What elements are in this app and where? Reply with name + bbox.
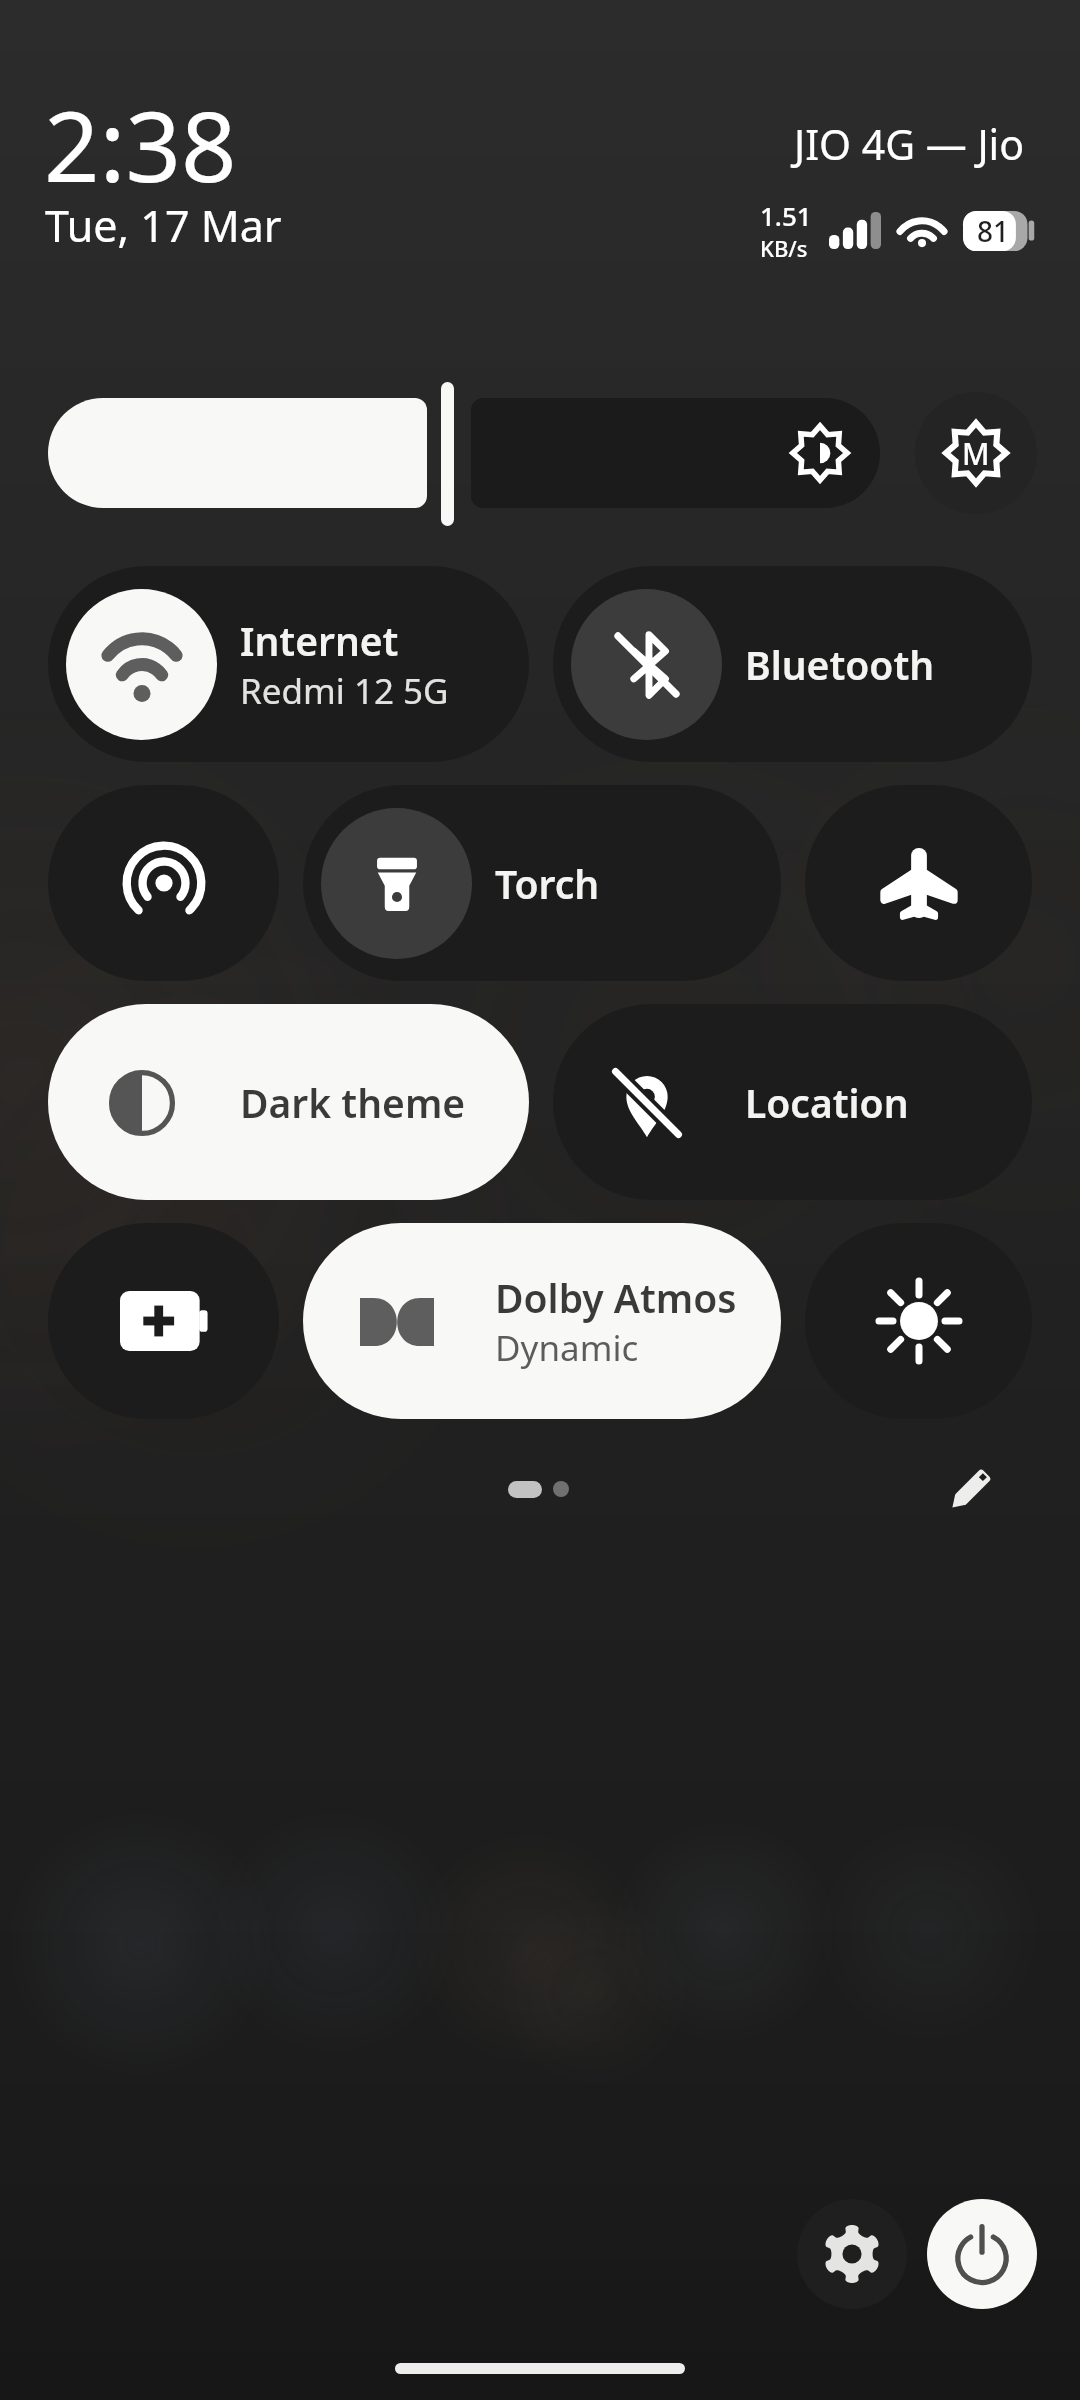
button[interactable]: Power	[927, 2199, 1037, 2309]
staticText: Tue, 17 Mar	[45, 196, 282, 255]
button[interactable]: Edit tiles	[924, 1444, 1016, 1536]
staticText: KB/s	[760, 233, 808, 263]
staticText: Dolby Atmos	[495, 1271, 737, 1324]
staticText: 2:38	[44, 78, 237, 210]
button[interactable]: Page 2	[553, 1481, 569, 1497]
staticText: Redmi 12 5G	[240, 667, 449, 715]
staticText: Internet	[240, 614, 399, 667]
button[interactable]: Page 1	[508, 1481, 542, 1498]
button[interactable]: Dolby Atmos	[303, 1223, 781, 1419]
button[interactable]: Settings	[797, 2199, 907, 2309]
button[interactable]: Dark theme	[48, 1004, 529, 1200]
button[interactable]: Battery saver	[48, 1223, 279, 1419]
staticText: 81	[977, 212, 1010, 250]
button[interactable]: Torch	[303, 785, 781, 981]
staticText: Location	[745, 1076, 909, 1129]
button[interactable]: Airplane mode	[805, 785, 1032, 981]
staticText: Bluetooth	[745, 638, 935, 691]
staticText: Dynamic	[495, 1324, 639, 1372]
button[interactable]: Brightness slider	[48, 398, 427, 508]
button[interactable]: Brightness	[805, 1223, 1032, 1419]
button[interactable]: Bluetooth	[553, 566, 1032, 762]
staticText: M	[962, 433, 990, 474]
staticText: 1.51	[760, 198, 812, 233]
staticText: Torch	[495, 857, 600, 910]
staticText: JIO 4G — Jio	[794, 116, 1024, 172]
staticText: Dark theme	[240, 1076, 466, 1129]
button[interactable]: Internet	[48, 566, 529, 762]
button[interactable]: Auto brightness	[471, 398, 880, 508]
button[interactable]: Reading mode	[915, 392, 1037, 514]
button[interactable]: Hotspot	[48, 785, 279, 981]
button[interactable]: Location	[553, 1004, 1032, 1200]
